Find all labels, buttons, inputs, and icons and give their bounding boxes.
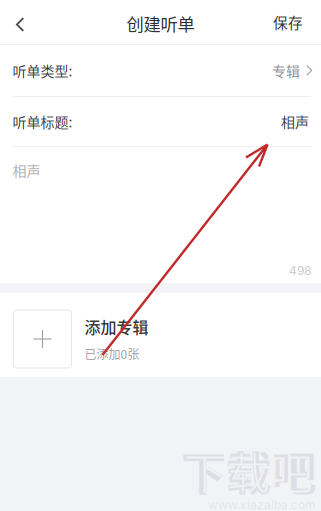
staticText: 下载吧 — [181, 438, 316, 504]
staticText: www.xiazaiba.com — [208, 498, 316, 511]
button[interactable]: Back — [0, 0, 44, 44]
staticText: 498 — [289, 263, 311, 278]
button[interactable]: 保存 — [254, 0, 321, 44]
staticText: 添加专辑 — [84, 315, 148, 338]
button[interactable]: Add album — [13, 302, 71, 368]
staticText: 听单标题: — [12, 111, 72, 132]
staticText: 创建听单 — [126, 11, 194, 36]
staticText: 专辑 — [272, 60, 300, 81]
staticText: 相声 — [281, 111, 309, 132]
button[interactable]: 听单类型: — [0, 45, 321, 96]
staticText: 听单类型: — [12, 60, 72, 81]
staticText: 下载吧 — [184, 440, 313, 502]
staticText: 已添加0张 — [84, 345, 139, 363]
staticText: 保存 — [273, 11, 303, 33]
staticText: 相声 — [12, 160, 40, 180]
